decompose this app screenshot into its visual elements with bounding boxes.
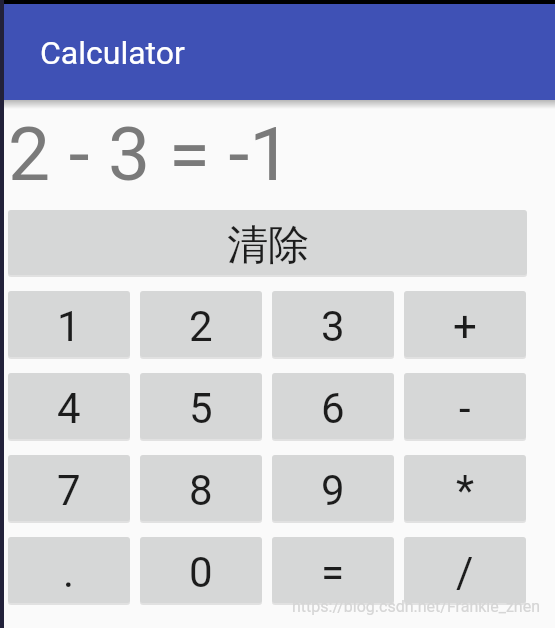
button[interactable]: 4 bbox=[8, 373, 130, 439]
staticText: + bbox=[453, 302, 477, 351]
staticText: https://blog.csdn.net/Frankie_zhen bbox=[292, 597, 540, 616]
staticText: 6 bbox=[321, 384, 345, 433]
button[interactable]: 清除 bbox=[8, 210, 527, 275]
button[interactable]: 0 bbox=[140, 537, 262, 603]
staticText: 3 bbox=[321, 302, 345, 351]
button[interactable]: 1 bbox=[8, 291, 130, 357]
button[interactable]: . bbox=[8, 537, 130, 603]
staticText: 清除 bbox=[227, 220, 309, 272]
staticText: * bbox=[456, 466, 475, 515]
staticText: Calculator bbox=[40, 34, 185, 72]
staticText: 2 - 3 = -1 bbox=[8, 110, 292, 198]
button[interactable]: 6 bbox=[272, 373, 394, 439]
staticText: 1 bbox=[57, 302, 81, 351]
button[interactable]: 2 bbox=[140, 291, 262, 357]
staticText: - bbox=[459, 384, 471, 433]
button[interactable]: = bbox=[272, 537, 394, 603]
button[interactable]: + bbox=[404, 291, 526, 357]
staticText: 8 bbox=[189, 466, 213, 515]
staticText: / bbox=[456, 548, 474, 597]
button[interactable]: 3 bbox=[272, 291, 394, 357]
button[interactable]: 9 bbox=[272, 455, 394, 521]
staticText: 2 bbox=[189, 302, 213, 351]
button[interactable]: 8 bbox=[140, 455, 262, 521]
staticText: 4 bbox=[57, 384, 81, 433]
staticText: = bbox=[321, 548, 345, 597]
button[interactable]: - bbox=[404, 373, 526, 439]
staticText: . bbox=[63, 548, 75, 597]
button[interactable]: 7 bbox=[8, 455, 130, 521]
staticText: 7 bbox=[57, 466, 81, 515]
button[interactable]: * bbox=[404, 455, 526, 521]
button[interactable]: 5 bbox=[140, 373, 262, 439]
staticText: 9 bbox=[321, 466, 345, 515]
button[interactable]: / bbox=[404, 537, 526, 603]
staticText: 0 bbox=[189, 548, 213, 597]
staticText: 5 bbox=[189, 384, 213, 433]
